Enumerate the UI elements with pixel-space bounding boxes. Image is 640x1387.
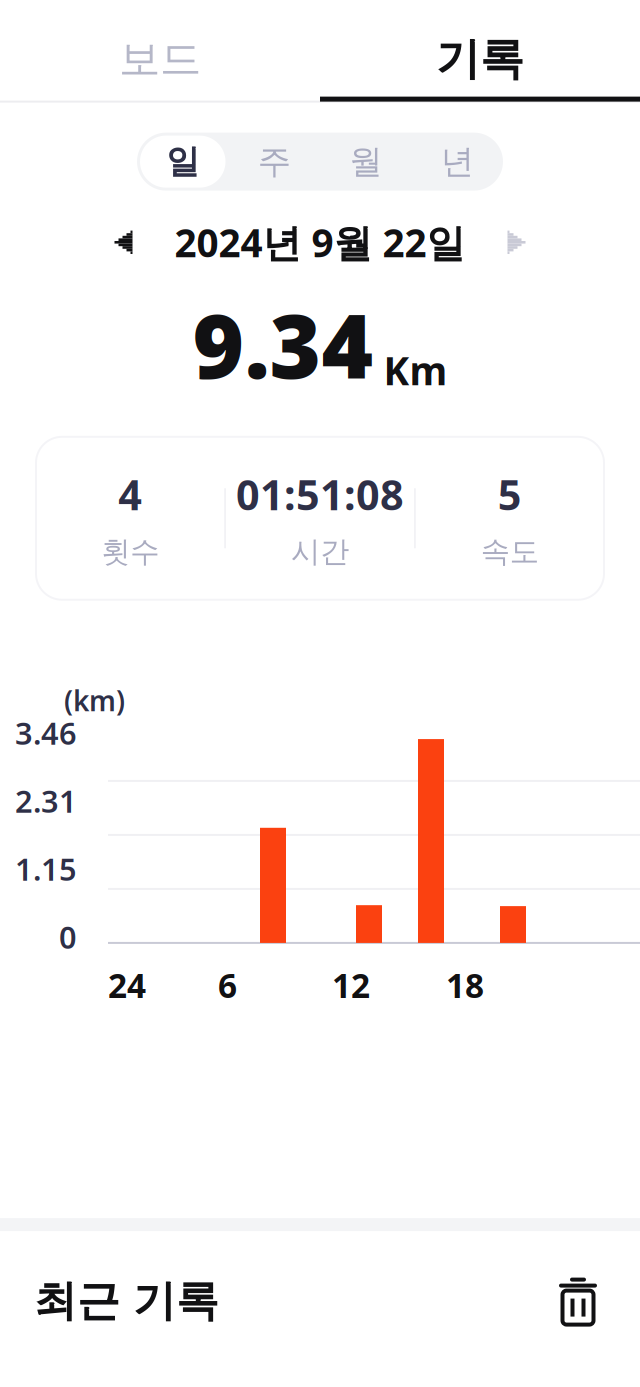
staticText: 12 [332, 963, 370, 1007]
staticText: 보드 [119, 34, 201, 84]
button[interactable]: Next day [491, 220, 541, 264]
button[interactable]: 년 [411, 133, 503, 191]
button[interactable]: Delete records [550, 1269, 606, 1333]
staticText: 최근 기록 [34, 1275, 219, 1327]
staticText: 기록 [436, 32, 524, 86]
staticText: 5 [498, 467, 522, 522]
staticText: 2.31 [15, 781, 77, 821]
staticText: 1.15 [15, 849, 77, 889]
button[interactable]: 일 [137, 133, 228, 191]
staticText: 년 [441, 141, 474, 182]
staticText: 4 [118, 467, 142, 522]
staticText: 시간 [291, 534, 349, 570]
staticText: 18 [446, 963, 484, 1007]
staticText: 3.46 [15, 713, 77, 753]
staticText: (km) [64, 682, 125, 719]
staticText: 일 [166, 141, 199, 182]
staticText: 2024년 9월 22일 [174, 217, 465, 268]
staticText: 주 [258, 141, 291, 182]
button[interactable]: 주 [228, 133, 320, 191]
staticText: 0 [59, 917, 77, 957]
button[interactable]: 보드 [0, 22, 320, 102]
staticText: 속도 [481, 534, 539, 570]
button[interactable]: 월 [320, 133, 411, 191]
button[interactable]: Previous day [98, 220, 148, 264]
staticText: 24 [108, 963, 146, 1007]
staticText: 횟수 [101, 534, 159, 570]
staticText: Km [383, 344, 447, 396]
staticText: 01:51:08 [236, 467, 404, 522]
staticText: 9.34 [192, 286, 373, 403]
button[interactable]: 기록 [320, 22, 640, 102]
staticText: 6 [218, 963, 237, 1007]
staticText: 월 [349, 141, 382, 182]
